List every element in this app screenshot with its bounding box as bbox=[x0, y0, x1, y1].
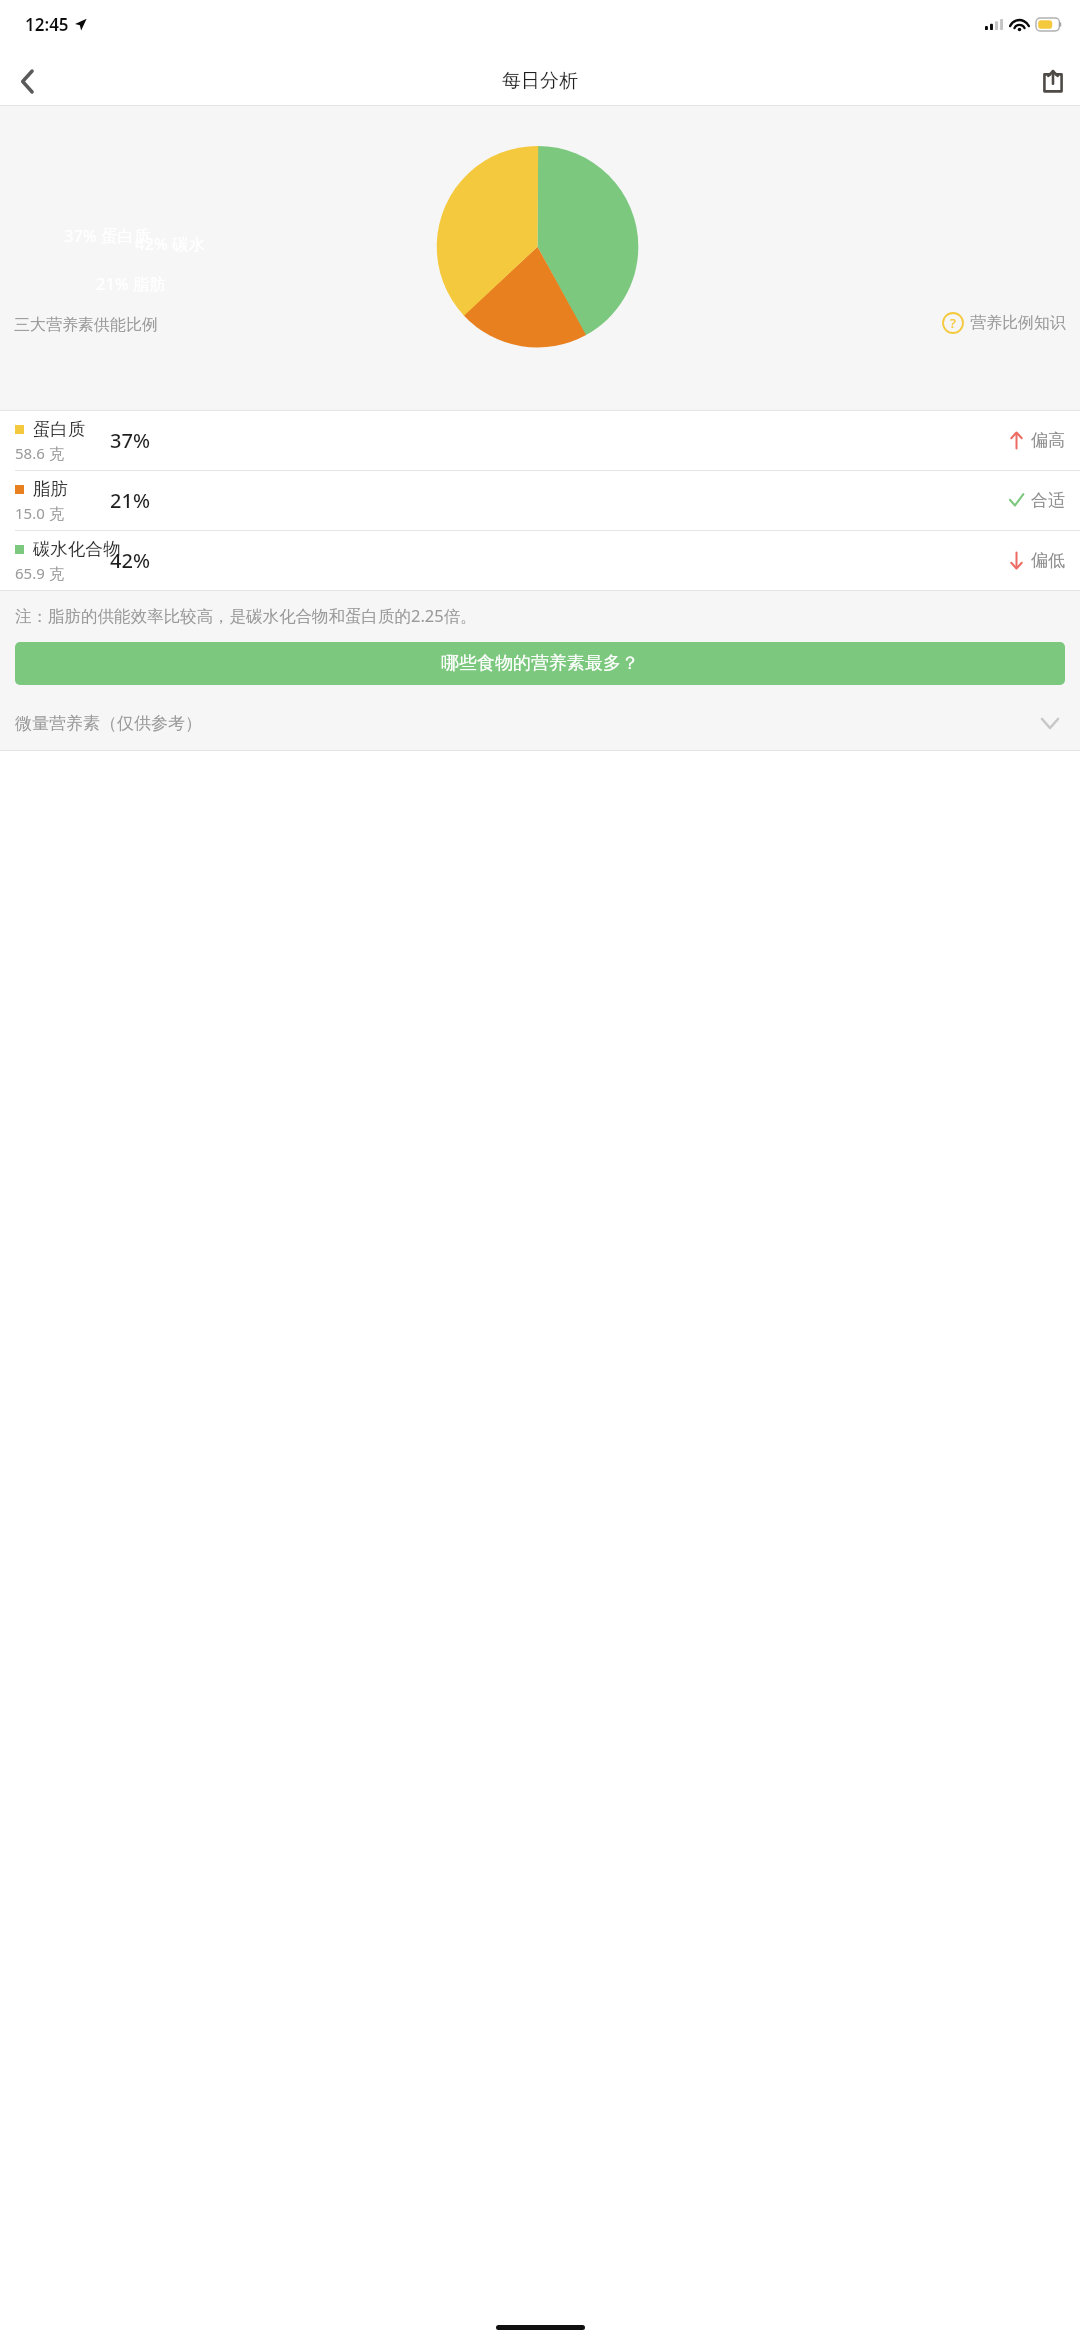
staticText: 21% 脂肪 bbox=[96, 272, 166, 295]
staticText: 注：脂肪的供能效率比较高，是碳水化合物和蛋白质的2.25倍。 bbox=[15, 604, 477, 627]
staticText: ? bbox=[950, 314, 956, 332]
other: Expand bbox=[1038, 711, 1062, 735]
staticText: 21% bbox=[110, 487, 150, 514]
button[interactable]: ? bbox=[942, 312, 1066, 334]
staticText: 每日分析 bbox=[502, 69, 578, 93]
button[interactable]: 蛋白质 bbox=[0, 411, 1080, 470]
staticText: 碳水化合物 bbox=[33, 538, 121, 560]
button[interactable]: 微量营养素（仅供参考） bbox=[0, 695, 1080, 751]
staticText: 偏低 bbox=[1031, 550, 1065, 571]
button[interactable]: 碳水化合物 bbox=[0, 531, 1080, 590]
staticText: 37% 蛋白质 bbox=[64, 224, 151, 247]
button[interactable]: 脂肪 bbox=[0, 471, 1080, 530]
staticText: 蛋白质 bbox=[33, 418, 86, 440]
staticText: 合适 bbox=[1031, 490, 1065, 511]
staticText: 65.9 克 bbox=[15, 563, 64, 583]
staticText: 42% bbox=[110, 547, 150, 574]
staticText: 微量营养素（仅供参考） bbox=[15, 713, 202, 734]
staticText: 营养比例知识 bbox=[970, 313, 1066, 333]
staticText: 三大营养素供能比例 bbox=[14, 315, 158, 335]
button[interactable]: Share bbox=[1026, 56, 1080, 106]
button[interactable]: Back bbox=[0, 56, 54, 106]
staticText: 脂肪 bbox=[33, 478, 68, 500]
staticText: 偏高 bbox=[1031, 430, 1065, 451]
button[interactable]: 哪些食物的营养素最多？ bbox=[15, 642, 1065, 685]
staticText: 37% bbox=[110, 427, 150, 454]
staticText: 58.6 克 bbox=[15, 443, 64, 463]
staticText: 15.0 克 bbox=[15, 503, 64, 523]
staticText: 哪些食物的营养素最多？ bbox=[441, 652, 639, 675]
staticText: 12:45 bbox=[25, 13, 69, 36]
staticText: 42% 碳水 bbox=[135, 232, 205, 255]
